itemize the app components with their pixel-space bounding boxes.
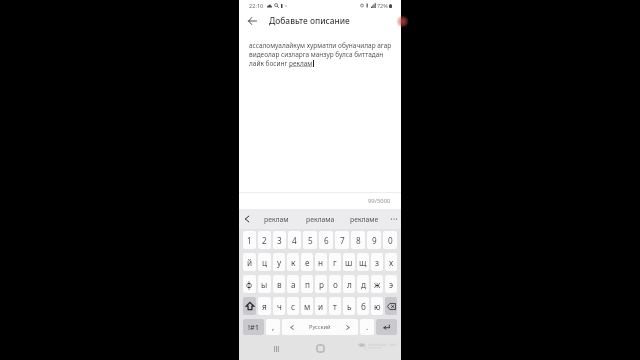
staticText: реклам [289,59,313,68]
staticText: 22:10 [249,2,264,10]
staticText: 6 [324,235,329,246]
staticText: ь [347,301,352,312]
staticText: й [247,257,253,268]
button[interactable]: щ [357,253,369,271]
button[interactable]: у [273,253,285,271]
staticText: реклам [264,215,289,224]
staticText: Русский [309,323,331,331]
button[interactable]: г [329,253,341,271]
staticText: 0 [388,235,393,246]
staticText: д [361,279,366,290]
button[interactable]: 8 [351,231,365,249]
button[interactable]: т [329,297,341,315]
button[interactable]: Recents [269,341,283,356]
button[interactable]: 5 [303,231,317,249]
staticText: н [318,257,324,268]
staticText: 3 [277,235,282,246]
staticText: у [277,257,282,268]
button[interactable]: ш [343,253,355,271]
staticText: ж [374,279,381,290]
staticText: лайк босинг [249,59,289,68]
button[interactable]: 9 [367,231,381,249]
staticText: ш [345,257,353,268]
staticText: Добавьте описание [269,15,350,26]
staticText: к [291,257,296,268]
staticText: 8 [356,235,361,246]
staticText: р [319,279,324,290]
button[interactable]: 6 [319,231,333,249]
button[interactable]: э [385,275,397,293]
button[interactable]: з [371,253,383,271]
button[interactable]: ф [243,275,256,293]
button[interactable]: 1 [243,231,256,249]
staticText: э [389,279,394,290]
staticText: 72% [377,2,388,9]
button[interactable]: м [301,297,313,315]
button[interactable]: Previous suggestions [239,209,255,229]
button[interactable]: п [301,275,313,293]
staticText: щ [359,257,367,268]
staticText: ассаломуалайкум хурматли обуначилар агар [249,41,392,50]
button[interactable]: н [315,253,327,271]
button[interactable]: Home [313,341,327,356]
staticText: 5 [308,235,313,246]
staticText: ч [277,301,282,312]
button[interactable]: Enter [376,319,397,335]
button[interactable]: а [287,275,299,293]
button[interactable]: !#1 [243,319,264,335]
staticText: ф [246,279,253,290]
button[interactable]: в [273,275,285,293]
button[interactable]: о [329,275,341,293]
button[interactable]: , [266,319,280,335]
staticText: 9 [372,235,377,246]
button[interactable]: Space [282,319,358,335]
staticText: п [305,279,310,290]
button[interactable]: и [315,297,327,315]
staticText: !#1 [248,322,260,332]
staticText: 2 [262,235,267,246]
button[interactable]: Shift [243,297,256,315]
staticText: 7 [340,235,345,246]
button[interactable]: ю [371,297,383,315]
staticText: , [272,321,275,332]
staticText: 1 [247,235,252,246]
button[interactable]: 0 [383,231,397,249]
staticText: г [333,257,337,268]
staticText: т [333,301,337,312]
button[interactable]: к [287,253,299,271]
staticText: а [291,279,296,290]
staticText: реклама [306,215,335,224]
button[interactable]: More suggestions [386,209,401,229]
button[interactable]: я [258,297,271,315]
staticText: о [333,279,338,290]
button[interactable]: реклама [298,209,342,229]
button[interactable]: й [243,253,256,271]
staticText: видеолар сизларга манзур булса биттадан [249,50,384,59]
button[interactable]: рекламе [342,209,386,229]
button[interactable]: ж [371,275,383,293]
button[interactable]: д [357,275,369,293]
button[interactable]: ь [343,297,355,315]
button[interactable]: е [301,253,313,271]
button[interactable]: ц [258,253,271,271]
button[interactable]: б [357,297,369,315]
button[interactable]: 4 [288,231,301,249]
button[interactable]: 2 [258,231,271,249]
staticText: з [375,257,379,268]
button[interactable]: реклам [255,209,298,229]
button[interactable]: Back [358,341,372,356]
button[interactable]: ч [273,297,285,315]
button[interactable]: ы [258,275,271,293]
button[interactable]: х [385,253,397,271]
button[interactable]: Backspace [385,297,397,315]
button[interactable]: Back [247,15,258,26]
button[interactable]: . [360,319,374,335]
button[interactable]: 7 [335,231,349,249]
button[interactable]: 3 [273,231,286,249]
staticText: х [389,257,394,268]
staticText: в [277,279,282,290]
button[interactable]: л [343,275,355,293]
button[interactable]: с [287,297,299,315]
staticText: рекламе [350,215,379,224]
button[interactable]: р [315,275,327,293]
